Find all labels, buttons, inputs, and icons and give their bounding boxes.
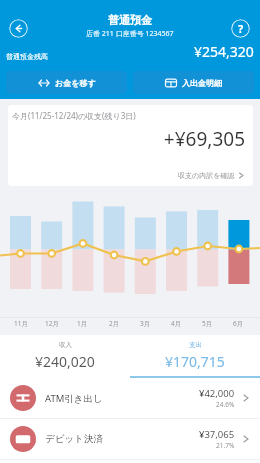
staticText: ? (238, 21, 244, 36)
staticText: 収支の内訳を確認 (178, 171, 235, 180)
staticText: 収入 (59, 341, 72, 349)
staticText: お金を移す (55, 78, 96, 88)
button[interactable]: 入出金明細 (133, 71, 254, 94)
staticText: +¥69,305 (8, 126, 245, 152)
staticText: 普通預金 (108, 13, 152, 27)
button[interactable]: 収入 (0, 335, 130, 378)
staticText: ¥254,320 (194, 42, 254, 61)
staticText: 入出金明細 (182, 78, 222, 88)
staticText: ¥42,000 (199, 387, 235, 400)
button[interactable]: デビット決済 (0, 419, 260, 459)
staticText: 2月 (109, 319, 120, 328)
staticText: 今月(11/25-12/24)の収支(残り3日) (12, 110, 136, 121)
staticText: 12月 (45, 319, 59, 328)
staticText: 1月 (77, 319, 88, 328)
staticText: ¥240,020 (35, 352, 95, 371)
staticText: 24.6% (216, 400, 235, 409)
staticText: ¥37,065 (199, 428, 235, 441)
staticText: 11月 (14, 319, 28, 328)
staticText: ¥170,715 (165, 352, 225, 371)
staticText: ATM引き出し (45, 392, 103, 405)
staticText: 5月 (202, 319, 213, 328)
button[interactable]: 今月(11/25-12/24)の収支(残り3日) (8, 105, 253, 186)
staticText: 支出 (189, 341, 202, 349)
staticText: 6月 (233, 319, 244, 328)
staticText: デビット決済 (45, 433, 103, 445)
button[interactable]: 支出 (130, 335, 260, 378)
button[interactable]: Back (9, 19, 28, 38)
button[interactable]: Help (231, 19, 250, 38)
staticText: 店番 211 口座番号 1234567 (86, 29, 174, 39)
staticText: 21.7% (216, 441, 235, 450)
staticText: 3月 (140, 319, 151, 328)
staticText: 4月 (171, 319, 182, 328)
button[interactable]: お金を移す (6, 71, 127, 94)
button[interactable]: ATM引き出し (0, 378, 260, 418)
staticText: 普通預金残高 (6, 52, 48, 61)
